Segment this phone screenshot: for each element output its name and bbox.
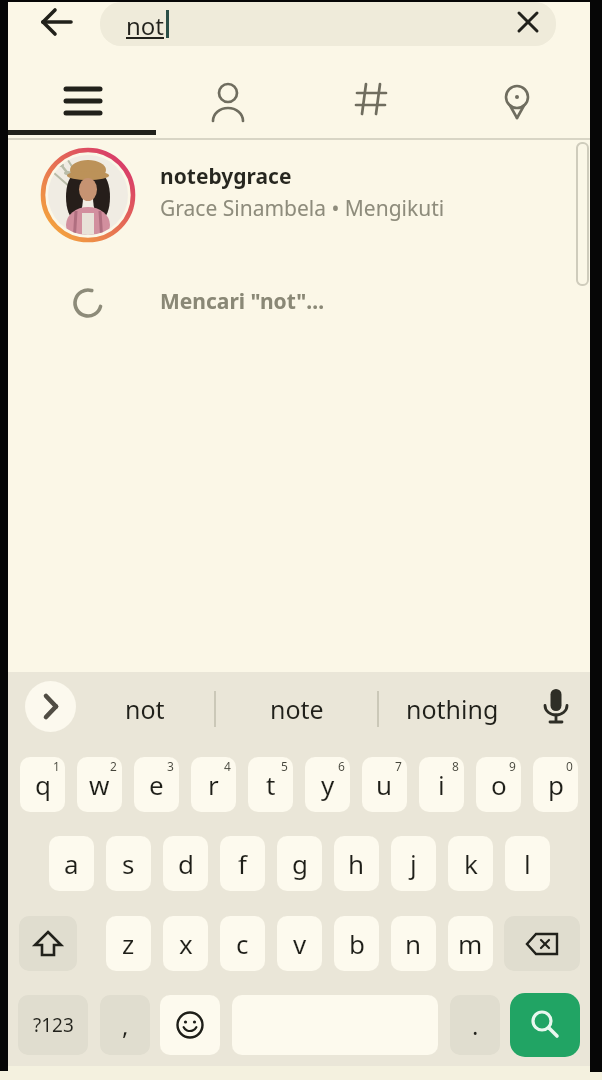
staticText: f <box>238 846 247 881</box>
button[interactable]: m <box>448 916 493 971</box>
staticText: e <box>149 767 164 802</box>
staticText: note <box>270 692 324 726</box>
button[interactable]: . <box>450 995 500 1055</box>
staticText: p <box>548 767 564 802</box>
button[interactable] <box>510 993 580 1057</box>
button[interactable]: k <box>448 836 493 891</box>
staticText: z <box>122 926 135 961</box>
button[interactable]: t <box>248 757 293 812</box>
button[interactable]: nothing <box>380 684 524 734</box>
button[interactable] <box>8 62 156 128</box>
staticText: 3 <box>167 758 174 774</box>
staticText: h <box>348 846 365 881</box>
button[interactable] <box>446 62 590 128</box>
staticText: s <box>122 846 135 881</box>
staticText: b <box>349 926 365 961</box>
button[interactable]: s <box>106 836 151 891</box>
staticText: 8 <box>452 758 459 774</box>
staticText: y <box>321 767 335 802</box>
staticText: u <box>376 767 393 802</box>
staticText: 2 <box>110 758 117 774</box>
staticText: r <box>208 767 219 802</box>
button[interactable]: a <box>49 836 94 891</box>
staticText: not <box>126 9 165 42</box>
button[interactable]: l <box>505 836 550 891</box>
button[interactable] <box>156 62 301 128</box>
button[interactable]: u <box>362 757 407 812</box>
button[interactable] <box>517 11 539 33</box>
button[interactable]: v <box>277 916 322 971</box>
button[interactable]: b <box>334 916 379 971</box>
staticText: c <box>236 926 249 961</box>
staticText: 5 <box>281 758 288 774</box>
staticText: o <box>491 767 507 802</box>
button[interactable]: e <box>134 757 179 812</box>
button[interactable]: o <box>476 757 521 812</box>
button[interactable]: n <box>391 916 436 971</box>
staticText: not <box>125 692 165 726</box>
staticText: x <box>179 926 193 961</box>
staticText: m <box>458 926 483 961</box>
staticText: j <box>410 846 417 881</box>
button[interactable]: ?123 <box>18 995 88 1055</box>
button[interactable]: p <box>533 757 578 812</box>
button[interactable] <box>19 916 77 971</box>
staticText: Mencari "not"… <box>160 287 325 316</box>
button[interactable]: c <box>220 916 265 971</box>
button[interactable] <box>38 6 74 38</box>
staticText: t <box>266 767 276 802</box>
staticText: v <box>293 926 307 961</box>
button[interactable]: x <box>163 916 208 971</box>
button[interactable] <box>504 916 580 971</box>
button[interactable]: r <box>191 757 236 812</box>
staticText: d <box>178 846 194 881</box>
button[interactable]: z <box>106 916 151 971</box>
button[interactable] <box>25 681 76 732</box>
staticText: i <box>438 767 445 802</box>
button[interactable]: note <box>218 684 376 734</box>
staticText: q <box>35 767 51 802</box>
staticText: g <box>292 846 308 881</box>
staticText: 4 <box>224 758 231 774</box>
staticText: nothing <box>406 692 499 726</box>
button[interactable]: g <box>277 836 322 891</box>
button[interactable]: f <box>220 836 265 891</box>
button[interactable]: w <box>77 757 122 812</box>
staticText: 6 <box>338 758 345 774</box>
staticText: 7 <box>395 758 402 774</box>
button[interactable]: h <box>334 836 379 891</box>
button[interactable] <box>160 995 220 1055</box>
staticText: a <box>64 846 79 881</box>
staticText: notebygrace <box>160 162 292 191</box>
staticText: 1 <box>53 758 60 774</box>
button[interactable] <box>40 147 136 243</box>
staticText: ?123 <box>33 1012 74 1038</box>
staticText: n <box>405 926 422 961</box>
staticText: , <box>122 1009 129 1042</box>
button[interactable] <box>540 686 572 732</box>
button[interactable] <box>301 62 446 128</box>
button[interactable]: d <box>163 836 208 891</box>
button[interactable]: not <box>100 2 556 46</box>
staticText: . <box>472 1009 479 1042</box>
staticText: 9 <box>509 758 516 774</box>
button[interactable]: i <box>419 757 464 812</box>
staticText: Grace Sinambela • Mengikuti <box>160 194 445 223</box>
staticText: l <box>524 846 531 881</box>
button[interactable]: q <box>20 757 65 812</box>
button[interactable]: y <box>305 757 350 812</box>
staticText: k <box>464 846 478 881</box>
button[interactable] <box>8 142 590 248</box>
button[interactable]: j <box>391 836 436 891</box>
button[interactable]: , <box>100 995 150 1055</box>
staticText: w <box>89 767 110 802</box>
staticText: 0 <box>566 758 573 774</box>
button[interactable]: not <box>76 684 214 734</box>
